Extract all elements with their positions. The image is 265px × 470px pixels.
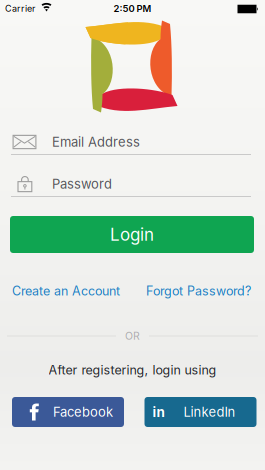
button[interactable]: in [144,397,256,427]
staticText: 2:50 PM [113,3,151,14]
button[interactable]: Forgot Password? [146,284,251,298]
button[interactable]: Login [10,216,254,253]
staticText: Forgot Password? [146,284,251,298]
staticText: in [152,404,164,420]
staticText: Carrier [5,3,35,14]
button[interactable]: Password [0,172,265,197]
button[interactable]: Facebook [12,397,124,427]
button[interactable]: Create an Account [12,284,120,298]
staticText: Password [52,176,112,192]
staticText: Create an Account [12,284,120,298]
button[interactable]: Email Address [0,130,265,155]
staticText: After registering, login using [48,363,216,377]
staticText: LinkedIn [183,404,235,420]
staticText: Login [110,224,154,245]
staticText: OR [125,330,140,342]
staticText: Email Address [52,134,140,150]
staticText: Facebook [53,404,113,420]
